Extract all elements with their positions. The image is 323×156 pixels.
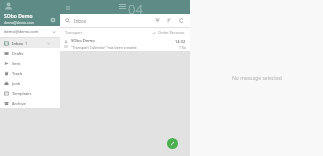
button[interactable]: Sent bbox=[0, 58, 60, 68]
staticText: demo@demo.com bbox=[4, 20, 35, 25]
staticText: Transport bbox=[65, 30, 83, 35]
button[interactable]: Filter bbox=[154, 17, 161, 24]
button[interactable]: Trash bbox=[0, 68, 60, 78]
button[interactable]: Junk bbox=[0, 78, 60, 88]
button[interactable]: Menu bbox=[64, 4, 71, 11]
button[interactable]: SObo Demo bbox=[60, 37, 190, 51]
staticText: Inbox bbox=[12, 41, 23, 46]
button[interactable]: Compose bbox=[167, 138, 178, 149]
button[interactable]: Refresh bbox=[178, 17, 185, 24]
button[interactable]: Archive bbox=[0, 98, 60, 108]
button[interactable]: Sort bbox=[166, 17, 173, 24]
staticText: Trash bbox=[12, 71, 23, 76]
button[interactable]: Inbox bbox=[60, 14, 190, 27]
staticText: 04 bbox=[128, 0, 143, 14]
staticText: No message selected bbox=[232, 75, 282, 82]
button[interactable]: Inbox bbox=[0, 38, 60, 48]
staticText: Templates bbox=[12, 91, 32, 96]
staticText: Inbox bbox=[74, 18, 87, 24]
staticText: Archive bbox=[12, 101, 26, 106]
button[interactable]: Templates bbox=[0, 88, 60, 98]
button[interactable]: demo@demo.com bbox=[0, 26, 60, 37]
staticText: demo@demo.com bbox=[4, 29, 52, 34]
staticText: "Transport Calendar" has been created bbox=[71, 45, 137, 50]
staticText: Sent bbox=[12, 61, 21, 66]
staticText: 1 bbox=[25, 41, 28, 46]
staticText: SObo Demo bbox=[71, 38, 95, 44]
staticText: Junk bbox=[12, 81, 21, 86]
button[interactable]: Ordre Recevoir bbox=[158, 30, 185, 35]
staticText: SObo Demo bbox=[4, 13, 33, 20]
button[interactable]: Drafts bbox=[0, 48, 60, 58]
button[interactable]: SObo Demo bbox=[0, 0, 60, 26]
button[interactable]: Settings bbox=[49, 16, 57, 24]
staticText: 14:02 bbox=[175, 39, 186, 44]
staticText: Drafts bbox=[12, 51, 24, 56]
staticText: 1 Ko bbox=[179, 45, 186, 50]
